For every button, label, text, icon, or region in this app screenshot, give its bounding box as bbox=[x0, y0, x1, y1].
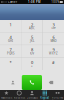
staticText: * bbox=[9, 60, 11, 65]
button[interactable]: Contacts bbox=[26, 90, 38, 100]
staticText: 100% bbox=[51, 0, 59, 4]
staticText: 5 bbox=[31, 34, 33, 40]
staticText: TUV bbox=[29, 52, 34, 55]
button[interactable]: Keypad bbox=[38, 90, 51, 100]
button[interactable]: Call bbox=[22, 75, 42, 90]
staticText: 8 bbox=[31, 47, 33, 52]
staticText: 1:08 PM bbox=[28, 0, 40, 4]
staticText: WXYZ bbox=[49, 52, 58, 55]
staticText: Contacts bbox=[26, 96, 37, 99]
button[interactable]: 8 bbox=[21, 45, 43, 57]
staticText: PQRS bbox=[7, 52, 14, 55]
staticText: Carrier bbox=[7, 0, 17, 4]
button[interactable]: 2 bbox=[21, 20, 43, 32]
button[interactable]: 3 bbox=[43, 20, 64, 32]
button[interactable]: 1 bbox=[0, 20, 21, 32]
staticText: Favorites bbox=[1, 96, 12, 99]
staticText: DEF bbox=[51, 26, 55, 30]
button[interactable]: 5 bbox=[21, 33, 43, 45]
button[interactable]: 4 bbox=[0, 33, 21, 45]
staticText: JKL bbox=[30, 39, 34, 43]
button[interactable]: Add Contact bbox=[4, 75, 22, 90]
staticText: 3 bbox=[52, 22, 54, 27]
button[interactable]: 9 bbox=[43, 45, 64, 57]
button[interactable]: Favorites bbox=[0, 90, 13, 100]
button[interactable]: 6 bbox=[43, 33, 64, 45]
staticText: + bbox=[31, 64, 33, 68]
button[interactable]: Delete bbox=[42, 75, 60, 90]
staticText: ABC bbox=[29, 26, 35, 30]
button[interactable]: 7 bbox=[0, 45, 21, 57]
button[interactable]: Recents bbox=[13, 90, 26, 100]
staticText: GHI bbox=[8, 39, 13, 43]
staticText: 4 bbox=[9, 34, 11, 40]
button[interactable]: 0 bbox=[21, 58, 43, 70]
staticText: # bbox=[52, 60, 55, 65]
staticText: 7 bbox=[9, 47, 11, 52]
staticText: 2 bbox=[31, 22, 33, 27]
staticText: Keypad bbox=[40, 96, 49, 99]
button[interactable]: # bbox=[43, 58, 64, 70]
staticText: 9 bbox=[52, 47, 54, 52]
staticText: Recents bbox=[14, 96, 25, 99]
staticText: Voicemail bbox=[52, 96, 64, 100]
button[interactable]: Voicemail bbox=[51, 90, 64, 100]
button[interactable]: * bbox=[0, 58, 21, 70]
staticText: 6 bbox=[52, 34, 54, 40]
staticText: 0 bbox=[31, 60, 33, 65]
staticText: MNO bbox=[50, 39, 56, 43]
staticText: 1 bbox=[9, 22, 11, 27]
